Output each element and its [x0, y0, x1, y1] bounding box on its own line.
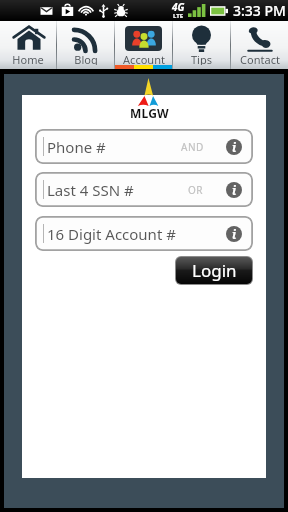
staticText: 3:33 PM — [233, 1, 286, 20]
button[interactable]: Contact — [231, 21, 288, 69]
staticText: 16 Digit Account # — [47, 224, 176, 244]
staticText: 4G — [172, 0, 185, 14]
button[interactable]: Info about 16 Digit Account # — [226, 226, 242, 242]
button[interactable]: Info about Phone # — [226, 139, 242, 155]
staticText: i — [232, 226, 237, 242]
button[interactable]: Tips — [173, 21, 230, 69]
staticText: Login — [192, 259, 237, 282]
button[interactable]: Blog — [57, 21, 114, 69]
staticText: AND — [181, 140, 204, 154]
button[interactable]: Account — [115, 21, 172, 69]
staticText: i — [232, 182, 237, 198]
button[interactable]: 16 Digit Account # — [35, 216, 253, 251]
staticText: Blog — [74, 52, 98, 65]
button[interactable]: Last 4 SSN # — [35, 172, 253, 207]
staticText: LTE — [173, 12, 184, 19]
staticText: Contact — [240, 52, 280, 65]
staticText: OR — [188, 183, 204, 197]
staticText: i — [232, 139, 237, 155]
button[interactable]: Phone # — [35, 129, 253, 164]
staticText: Last 4 SSN # — [47, 180, 134, 200]
button[interactable]: Home — [0, 21, 56, 69]
staticText: Home — [12, 52, 44, 65]
button[interactable]: Login — [176, 257, 252, 284]
staticText: Phone # — [47, 137, 106, 157]
button[interactable]: Info about Last 4 SSN # — [226, 182, 242, 198]
staticText: Tips — [191, 52, 212, 65]
staticText: Account — [123, 52, 165, 65]
staticText: MLGW — [130, 105, 169, 121]
